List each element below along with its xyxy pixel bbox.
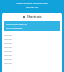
staticText: Create dynamic shortcuts with the new AP…: [0, 2, 64, 8]
staticText: Item text: [4, 62, 13, 65]
button[interactable]: Item text: [2, 53, 62, 57]
button[interactable]: Item text: [2, 37, 62, 41]
button[interactable]: Item text: [2, 41, 62, 45]
staticText: Item text: [4, 42, 13, 45]
staticText: Item text: [4, 54, 13, 57]
staticText: Item text: [4, 50, 13, 53]
staticText: Item text: [4, 58, 13, 61]
button[interactable]: Item text: [2, 33, 62, 37]
staticText: Item text: [4, 46, 13, 49]
button[interactable]: Lorem ipsum dolor sit amet consectetur: [4, 21, 60, 31]
button[interactable]: Item text: [2, 61, 62, 65]
button[interactable]: Item text: [2, 57, 62, 61]
staticText: Item text: [4, 34, 13, 37]
staticText: Lorem ipsum dolor sit amet consectetur: [6, 23, 27, 29]
button[interactable]: Item text: [2, 49, 62, 53]
staticText: Shortcuts: [27, 15, 42, 19]
staticText: Item text: [4, 38, 13, 41]
button[interactable]: Item text: [2, 45, 62, 49]
